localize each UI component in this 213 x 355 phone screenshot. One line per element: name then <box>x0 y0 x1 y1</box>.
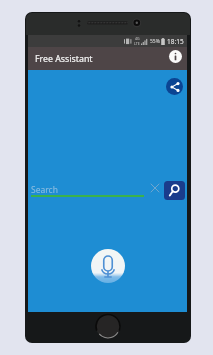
button[interactable]: Search <box>164 181 185 200</box>
staticText: 55% <box>150 38 160 45</box>
button[interactable]: Voice search <box>91 249 125 283</box>
staticText: LTE <box>134 41 140 46</box>
button[interactable]: Info <box>166 47 185 66</box>
staticText: Free Assistant <box>35 53 93 65</box>
staticText: 18:15 <box>167 37 184 46</box>
button[interactable]: Clear <box>148 181 162 195</box>
button[interactable]: Share <box>166 78 183 95</box>
staticText: Search <box>31 184 58 196</box>
button[interactable]: Home <box>95 313 121 339</box>
staticText: 4G <box>135 36 140 41</box>
